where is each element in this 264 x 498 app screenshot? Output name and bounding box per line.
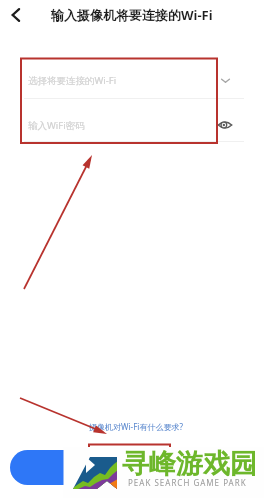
- staticText: 选择将要连接的Wi-Fi: [28, 74, 219, 87]
- staticText: 寻峰游戏园: [122, 447, 257, 481]
- staticText: 输入摄像机将要连接的Wi-Fi: [51, 6, 213, 24]
- other: Choose Wi-Fi: [219, 74, 232, 87]
- staticText: 输入WiFi密码: [28, 119, 218, 132]
- button[interactable]: Show password: [218, 118, 232, 132]
- button[interactable]: 摄像机对Wi-Fi有什么要求?: [0, 419, 264, 430]
- button[interactable]: 选择将要连接的Wi-Fi: [0, 58, 264, 98]
- staticText: PEAK SEARCH GAME PARK: [128, 477, 247, 488]
- button[interactable]: Back: [0, 0, 32, 29]
- button[interactable]: [10, 450, 253, 485]
- button[interactable]: 输入WiFi密码: [0, 99, 264, 141]
